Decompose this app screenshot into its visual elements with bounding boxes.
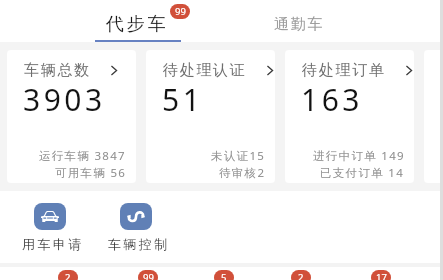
staticText: 用车申请 (22, 236, 84, 252)
staticText: 待处理认证 (163, 61, 247, 80)
button[interactable]: 待处理订单 (285, 50, 414, 183)
staticText: 未认证15 (211, 148, 266, 164)
button[interactable] (424, 50, 443, 183)
staticText: 99 (175, 5, 186, 18)
button[interactable]: 待处理认证 (146, 50, 275, 183)
staticText: 3903 (23, 79, 106, 120)
button[interactable]: 车辆总数 (7, 50, 136, 183)
staticText: 待处理订单 (302, 61, 386, 80)
staticText: 进行中订单 149 (313, 148, 405, 164)
staticText: 已支付订单 14 (320, 165, 405, 181)
button[interactable]: 通勤车 (256, 0, 342, 42)
staticText: 车辆总数 (24, 61, 91, 80)
staticText: 车辆控制 (108, 236, 170, 252)
staticText: 运行车辆 3847 (39, 148, 127, 164)
button[interactable]: 车辆控制 (96, 203, 176, 252)
staticText: 51 (162, 79, 204, 120)
button[interactable]: 代步车 (95, 0, 181, 42)
staticText: 5 (221, 271, 227, 280)
staticText: 代步车 (106, 13, 169, 36)
staticText: 163 (301, 79, 363, 120)
staticText: 99 (143, 271, 154, 280)
staticText: 2 (298, 271, 304, 280)
staticText: 可用车辆 56 (55, 165, 127, 181)
staticText: 2 (65, 271, 71, 280)
staticText: 待审核2 (219, 165, 266, 181)
staticText: 17 (376, 271, 387, 280)
staticText: 通勤车 (274, 15, 325, 34)
button[interactable]: 用车申请 (10, 203, 90, 252)
